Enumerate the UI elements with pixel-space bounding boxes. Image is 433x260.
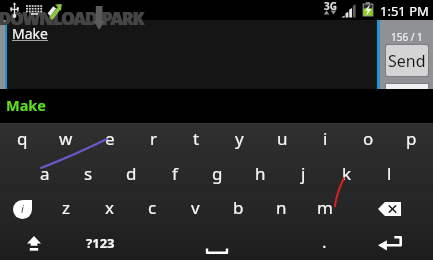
- button[interactable]: r: [132, 123, 175, 158]
- staticText: PARK: [102, 7, 144, 30]
- button[interactable]: z: [44, 192, 88, 226]
- button[interactable]: ?123: [68, 226, 132, 260]
- button[interactable]: h: [239, 158, 282, 192]
- button[interactable]: y: [218, 123, 261, 158]
- staticText: ?123: [86, 234, 115, 252]
- button[interactable]: v: [174, 192, 217, 226]
- staticText: y: [235, 127, 244, 150]
- staticText: z: [62, 196, 70, 219]
- button[interactable]: s: [67, 158, 110, 192]
- staticText: r: [150, 127, 158, 150]
- button[interactable]: q: [0, 123, 44, 158]
- staticText: d: [126, 162, 137, 185]
- button[interactable]: p: [390, 123, 433, 158]
- button[interactable]: d: [110, 158, 153, 192]
- button[interactable]: l: [368, 158, 411, 192]
- staticText: Send: [388, 50, 426, 72]
- staticText: k: [342, 162, 352, 185]
- staticText: n: [276, 196, 287, 219]
- button[interactable]: n: [260, 192, 303, 226]
- button[interactable]: u: [261, 123, 304, 158]
- button[interactable]: e: [88, 123, 132, 158]
- button[interactable]: Backspace: [346, 192, 433, 226]
- staticText: PARK: [102, 7, 144, 30]
- button[interactable]: x: [88, 192, 131, 226]
- button[interactable]: Enter: [346, 226, 433, 260]
- staticText: b: [233, 196, 244, 219]
- staticText: DOWNLOAD: [0, 7, 98, 30]
- staticText: g: [212, 162, 223, 185]
- staticText: .: [322, 230, 327, 253]
- staticText: f: [172, 162, 178, 185]
- staticText: h: [255, 162, 266, 185]
- staticText: w: [59, 127, 73, 150]
- button[interactable]: Voice input: [0, 192, 44, 226]
- button[interactable]: Send: [386, 45, 428, 76]
- button[interactable]: c: [131, 192, 174, 226]
- staticText: l: [387, 162, 392, 185]
- button[interactable]: f: [153, 158, 196, 192]
- staticText: Make: [6, 95, 47, 115]
- button[interactable]: j: [282, 158, 325, 192]
- staticText: 3G: [324, 0, 337, 13]
- staticText: u: [277, 127, 288, 150]
- button[interactable]: Make: [0, 89, 90, 123]
- staticText: x: [105, 196, 114, 219]
- button[interactable]: .: [302, 226, 346, 260]
- staticText: PARK: [101, 7, 143, 30]
- staticText: c: [148, 196, 157, 219]
- button[interactable]: w: [44, 123, 88, 158]
- staticText: v: [191, 196, 200, 219]
- button[interactable]: Shift: [0, 226, 68, 260]
- staticText: t: [193, 127, 200, 150]
- staticText: s: [84, 162, 93, 185]
- button[interactable]: Space: [132, 226, 302, 260]
- button[interactable]: k: [325, 158, 368, 192]
- button[interactable]: t: [175, 123, 218, 158]
- staticText: DOWNLOAD: [0, 7, 98, 30]
- staticText: p: [406, 127, 417, 150]
- staticText: 156 / 1: [391, 30, 423, 44]
- button[interactable]: g: [196, 158, 239, 192]
- staticText: o: [363, 127, 374, 150]
- staticText: a: [40, 162, 50, 185]
- button[interactable]: m: [303, 192, 346, 226]
- staticText: Make: [12, 24, 48, 43]
- button[interactable]: i: [304, 123, 347, 158]
- staticText: i: [323, 127, 328, 150]
- staticText: q: [17, 127, 28, 150]
- button[interactable]: a: [23, 158, 67, 192]
- staticText: m: [317, 196, 333, 219]
- staticText: 1:51 PM: [380, 2, 429, 20]
- staticText: i: [21, 201, 24, 216]
- button[interactable]: b: [217, 192, 260, 226]
- staticText: DOWNLOAD: [0, 7, 97, 30]
- button[interactable]: o: [347, 123, 390, 158]
- staticText: j: [301, 162, 306, 185]
- staticText: e: [105, 127, 115, 150]
